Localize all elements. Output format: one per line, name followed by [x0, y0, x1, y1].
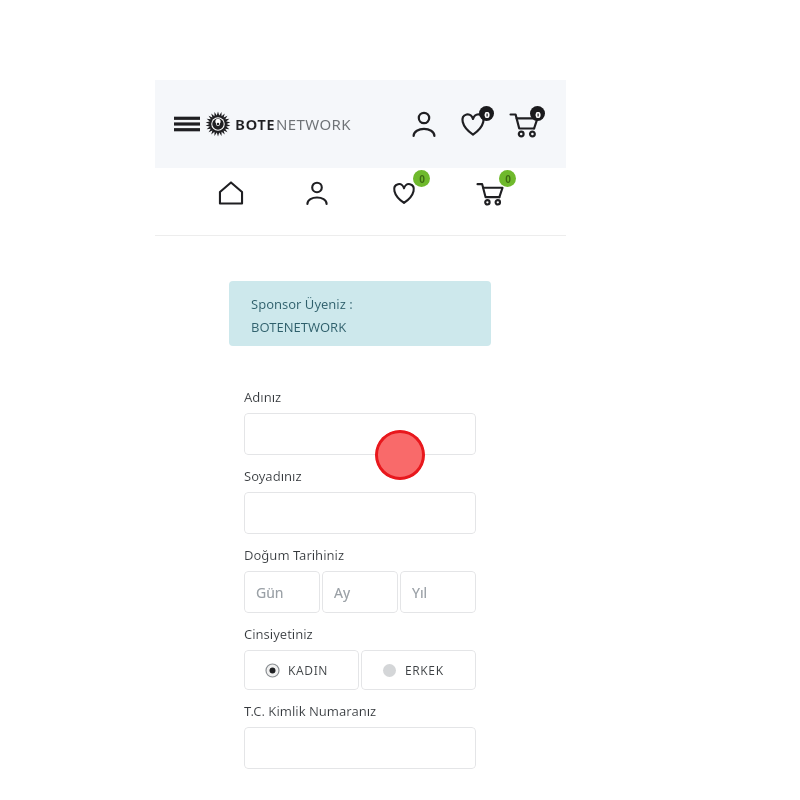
button[interactable]: Favorites — [379, 168, 429, 218]
button[interactable]: Cart — [465, 168, 515, 218]
button[interactable]: Home — [206, 168, 256, 218]
staticText: 0 — [484, 108, 490, 120]
staticText: Ay — [334, 583, 351, 602]
button[interactable]: Profile — [292, 168, 342, 218]
button[interactable]: Favorites — [451, 102, 495, 146]
button[interactable]: Ay — [322, 571, 398, 613]
staticText: NETWORK — [276, 114, 352, 134]
button[interactable]: BOTE — [205, 111, 352, 137]
staticText: Cinsiyetiniz — [244, 625, 313, 643]
staticText: Adınız — [244, 388, 282, 406]
button[interactable]: Account — [404, 104, 444, 144]
button[interactable]: Sponsor Üyeniz : — [229, 281, 491, 346]
button[interactable]: KADIN — [244, 650, 359, 690]
button[interactable] — [244, 492, 476, 534]
button[interactable]: ERKEK — [361, 650, 476, 690]
staticText: Gün — [256, 583, 284, 602]
staticText: KADIN — [288, 662, 329, 678]
staticText: T.C. Kimlik Numaranız — [244, 702, 377, 720]
staticText: Doğum Tarihiniz — [244, 546, 345, 564]
staticText: 0 — [419, 172, 425, 186]
staticText: 0 — [505, 172, 511, 186]
staticText: BOTENETWORK — [251, 318, 347, 336]
button[interactable] — [244, 413, 476, 455]
button[interactable]: Menu — [167, 104, 207, 144]
staticText: Soyadınız — [244, 467, 302, 485]
staticText: ERKEK — [405, 662, 444, 678]
button[interactable]: Yıl — [400, 571, 476, 613]
staticText: Yıl — [412, 583, 428, 602]
staticText: Sponsor Üyeniz : — [251, 295, 353, 313]
button[interactable] — [244, 727, 476, 769]
button[interactable]: Cart — [502, 102, 546, 146]
button[interactable]: Gün — [244, 571, 320, 613]
staticText: BOTE — [235, 114, 276, 134]
staticText: 0 — [535, 108, 541, 120]
